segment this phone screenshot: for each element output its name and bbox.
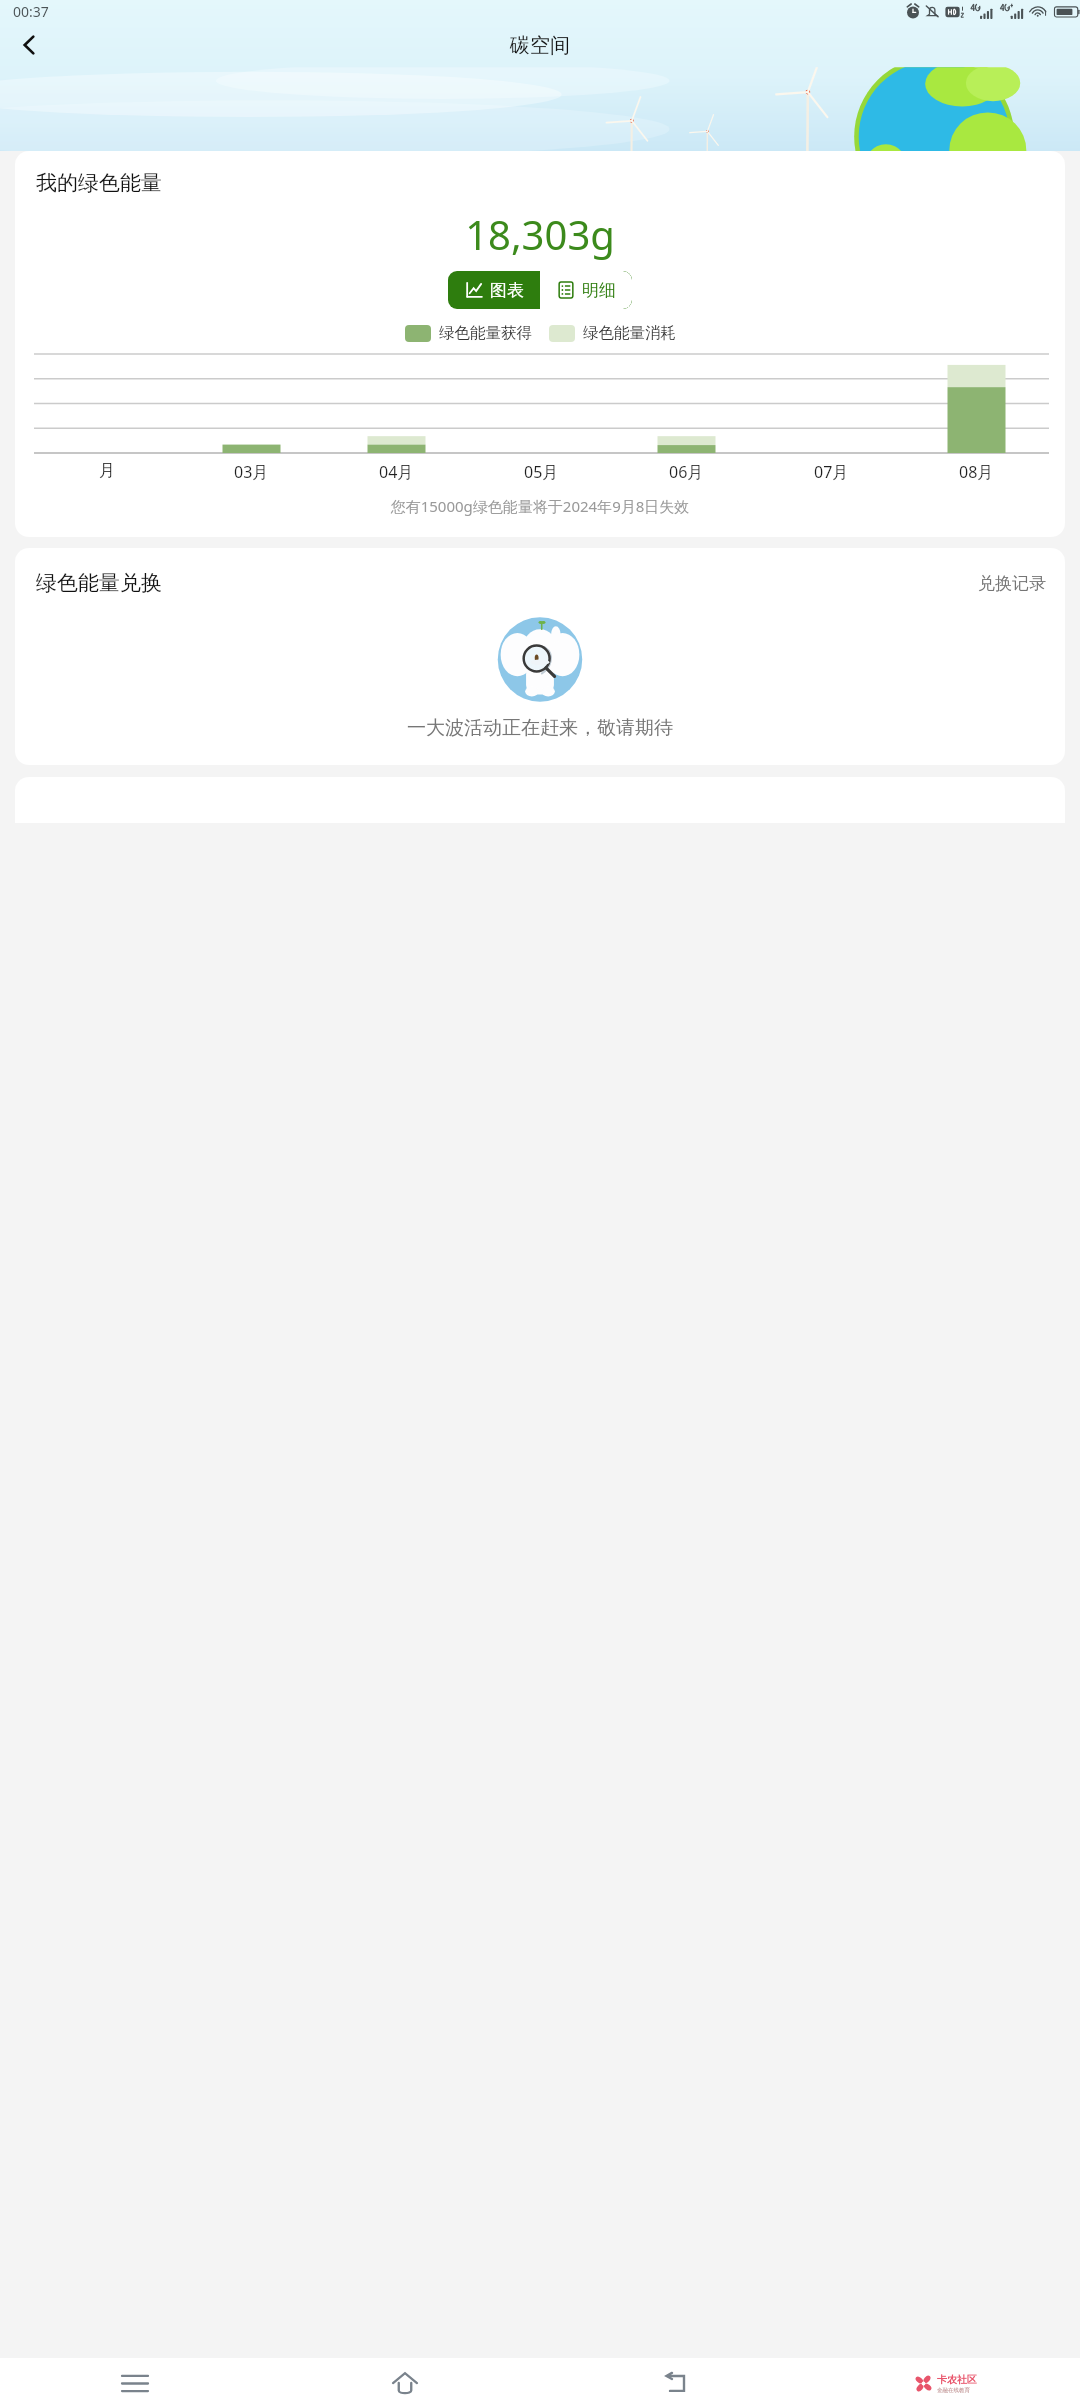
staticText: 07月: [814, 461, 849, 483]
staticText: 绿色能量兑换: [36, 570, 162, 596]
staticText: 您有15000g绿色能量将于2024年9月8日失效: [15, 496, 1065, 516]
staticText: 金融在线教育: [937, 2387, 970, 2394]
staticText: 明细: [582, 280, 616, 301]
button[interactable]: 图表: [448, 271, 540, 309]
staticText: 00:37: [13, 2, 49, 21]
staticText: 兑换记录: [978, 573, 1046, 594]
staticText: 月: [99, 461, 115, 481]
staticText: 08月: [959, 461, 994, 483]
staticText: 18,303g: [15, 207, 1065, 261]
staticText: 03月: [234, 461, 269, 483]
button[interactable]: Home: [270, 2358, 540, 2408]
button[interactable]: Recent apps: [0, 2358, 270, 2408]
button[interactable]: 明细: [540, 271, 632, 309]
button[interactable]: Back: [7, 23, 51, 67]
staticText: 碳空间: [510, 33, 570, 58]
staticText: 05月: [524, 461, 559, 483]
staticText: 04月: [379, 461, 414, 483]
button[interactable]: Back: [540, 2358, 810, 2408]
staticText: 我的绿色能量: [36, 170, 162, 196]
staticText: 图表: [490, 280, 524, 301]
staticText: 绿色能量消耗: [583, 323, 676, 343]
staticText: 绿色能量获得: [439, 323, 532, 343]
staticText: 一大波活动正在赶来，敬请期待: [15, 716, 1065, 740]
button[interactable]: 兑换记录: [978, 573, 1046, 594]
staticText: 卡农社区: [937, 2373, 977, 2386]
staticText: 06月: [669, 461, 704, 483]
